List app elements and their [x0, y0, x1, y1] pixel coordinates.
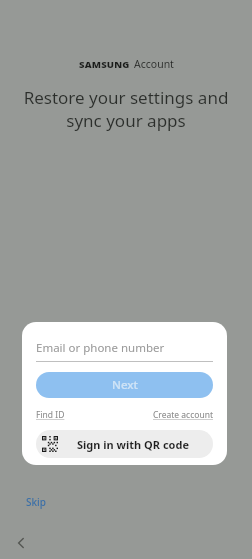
staticText: Next	[112, 377, 138, 393]
staticText: SAMSUNG	[79, 58, 130, 71]
staticText: Skip	[26, 495, 46, 509]
button[interactable]: Back	[6, 528, 36, 558]
staticText: Create account	[153, 409, 213, 421]
button[interactable]: Find ID	[36, 408, 65, 422]
staticText: Sign in with QR code	[77, 437, 189, 452]
staticText: Restore your settings and sync your apps	[16, 86, 236, 132]
staticText: Find ID	[36, 409, 65, 421]
button[interactable]: Sign in with QR code	[36, 430, 213, 458]
staticText: Email or phone number	[36, 340, 165, 356]
button[interactable]: Skip	[26, 495, 46, 509]
button[interactable]: Create account	[153, 408, 213, 422]
staticText: Account	[134, 57, 174, 71]
button[interactable]: Next	[36, 372, 213, 398]
button[interactable]: Email or phone number	[36, 335, 213, 361]
